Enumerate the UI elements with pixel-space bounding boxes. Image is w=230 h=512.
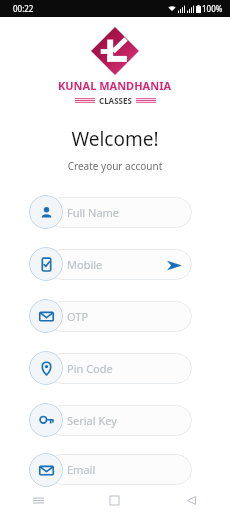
staticText: Pin Code: [67, 361, 113, 376]
staticText: 00:22: [13, 3, 34, 14]
button[interactable]: OTP: [29, 299, 63, 333]
staticText: CLASSES: [99, 95, 132, 106]
staticText: Welcome!: [0, 126, 230, 152]
button[interactable]: Back: [153, 488, 230, 512]
button[interactable]: OTP: [0, 295, 230, 337]
staticText: OTP: [67, 309, 89, 324]
staticText: Email: [67, 462, 96, 477]
button[interactable]: Pin Code: [0, 347, 230, 389]
staticText: Serial Key: [67, 413, 117, 428]
button[interactable]: Send OTP: [164, 255, 184, 275]
button[interactable]: Serial Key: [29, 403, 63, 437]
button[interactable]: Recents: [0, 488, 76, 512]
button[interactable]: Email: [0, 451, 230, 488]
button[interactable]: Home: [76, 488, 153, 512]
button[interactable]: Email: [29, 453, 63, 487]
button[interactable]: Mobile: [0, 243, 230, 285]
staticText: KUNAL MANDHANIA: [58, 78, 172, 93]
button[interactable]: Serial Key: [0, 399, 230, 441]
staticText: Mobile: [67, 257, 103, 272]
button[interactable]: Full Name: [29, 195, 63, 229]
staticText: Create your account: [0, 159, 230, 173]
button[interactable]: Pin Code: [29, 351, 63, 385]
button[interactable]: Full Name: [0, 191, 230, 233]
staticText: Full Name: [67, 205, 120, 220]
staticText: 100%: [202, 3, 223, 14]
button[interactable]: Mobile: [29, 247, 63, 281]
